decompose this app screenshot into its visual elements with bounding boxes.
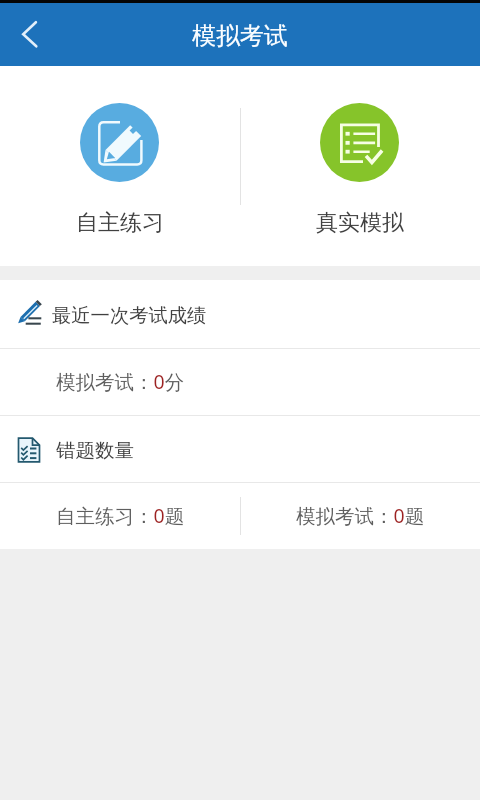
staticText: 真实模拟 bbox=[316, 209, 404, 237]
button[interactable]: 真实模拟 bbox=[240, 66, 480, 266]
button[interactable]: 错题数量 bbox=[0, 416, 480, 482]
staticText: 错题数量 bbox=[56, 438, 134, 463]
staticText: 自主练习 bbox=[76, 209, 164, 237]
staticText: 模拟考试：0题 bbox=[296, 502, 425, 529]
button[interactable]: Back bbox=[0, 3, 56, 66]
staticText: 自主练习：0题 bbox=[56, 502, 185, 529]
button[interactable]: 模拟考试：0题 bbox=[240, 483, 480, 549]
button[interactable]: 最近一次考试成绩 bbox=[0, 280, 480, 348]
button[interactable]: 自主练习 bbox=[0, 66, 240, 266]
button[interactable]: 自主练习：0题 bbox=[0, 483, 240, 549]
staticText: 模拟考试：0分 bbox=[56, 368, 185, 395]
staticText: 模拟考试 bbox=[192, 21, 288, 51]
staticText: 最近一次考试成绩 bbox=[52, 303, 207, 327]
